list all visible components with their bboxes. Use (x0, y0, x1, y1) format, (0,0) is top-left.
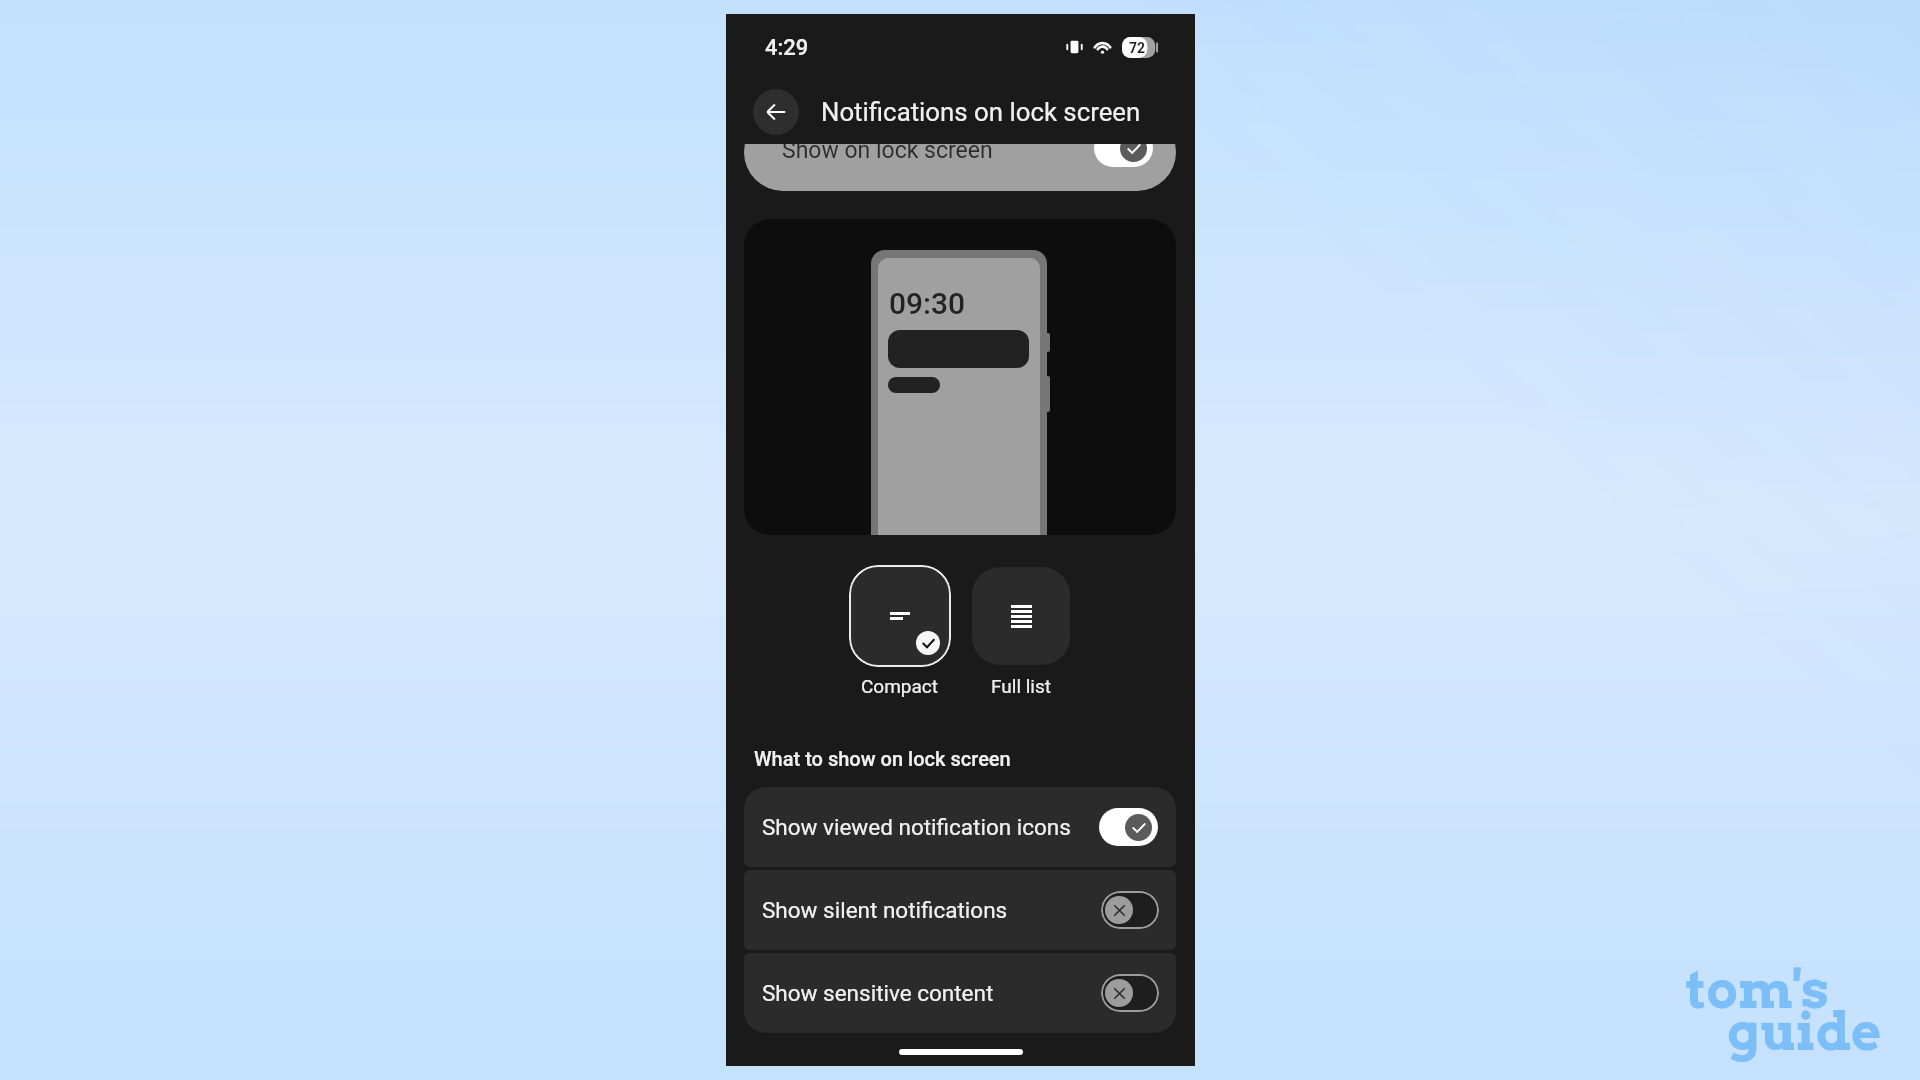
staticText: Show on lock screen (782, 137, 993, 164)
staticText: guide (1727, 1000, 1882, 1063)
staticText: 72 (1129, 40, 1146, 56)
staticText: tom's (1686, 958, 1830, 1021)
button[interactable]: Show sensitive content (744, 953, 1176, 1033)
staticText: Notifications on lock screen (821, 97, 1141, 127)
staticText: Compact (861, 675, 939, 697)
staticText: Show sensitive content (762, 980, 1100, 1006)
staticText: What to show on lock screen (754, 747, 1011, 770)
button[interactable]: Show on lock screen (744, 113, 1176, 191)
staticText: 09:30 (889, 286, 966, 321)
staticText: Show viewed notification icons (762, 814, 1099, 840)
button[interactable]: Full list layout (972, 567, 1070, 665)
staticText: Show silent notifications (762, 897, 1100, 923)
button[interactable]: Show viewed notification icons (744, 787, 1176, 867)
staticText: 4:29 (765, 35, 809, 61)
staticText: Full list (991, 675, 1051, 697)
button[interactable]: Compact layout, selected (849, 565, 951, 667)
button[interactable]: Back (753, 89, 799, 135)
button[interactable]: Show silent notifications (744, 870, 1176, 950)
